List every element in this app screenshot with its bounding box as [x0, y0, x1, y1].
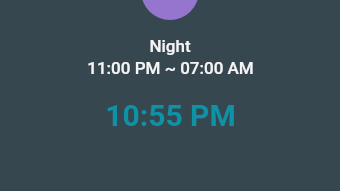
- button[interactable]: Night schedule: [141, 0, 199, 20]
- button[interactable]: 11:00 PM ~ 07:00 AM: [87, 58, 254, 78]
- button[interactable]: Night: [149, 36, 191, 56]
- button[interactable]: 10:55 PM: [105, 98, 236, 133]
